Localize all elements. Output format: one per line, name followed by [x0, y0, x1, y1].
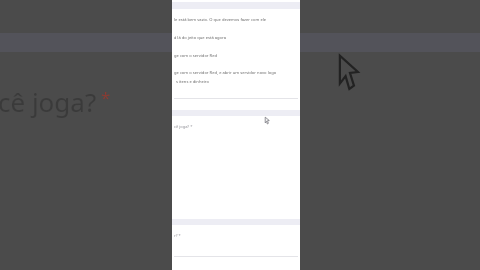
staticText: ge com o servidor Red, e abrir um servid…	[174, 70, 277, 76]
button[interactable]: ge com o servidor Red, e abrir um servid…	[172, 69, 300, 86]
staticText: cê joga? *	[174, 124, 193, 129]
button[interactable]: cê joga?	[0, 82, 113, 121]
button[interactable]: á lá do jeito que está agora	[172, 34, 300, 42]
staticText: r? *	[174, 233, 181, 238]
staticText: le está bem vazio. O que devemos fazer c…	[174, 17, 267, 23]
staticText: ge com o servidor Red	[174, 53, 217, 59]
staticText: s itens e dinheiro	[176, 79, 209, 85]
staticText: *	[101, 86, 111, 109]
other: Pointer	[339, 55, 361, 89]
staticText: á lá do jeito que está agora	[174, 35, 227, 41]
button[interactable]: ge com o servidor Red	[172, 52, 300, 60]
staticText: cê joga?	[0, 84, 97, 119]
other: Pointer	[265, 117, 270, 124]
